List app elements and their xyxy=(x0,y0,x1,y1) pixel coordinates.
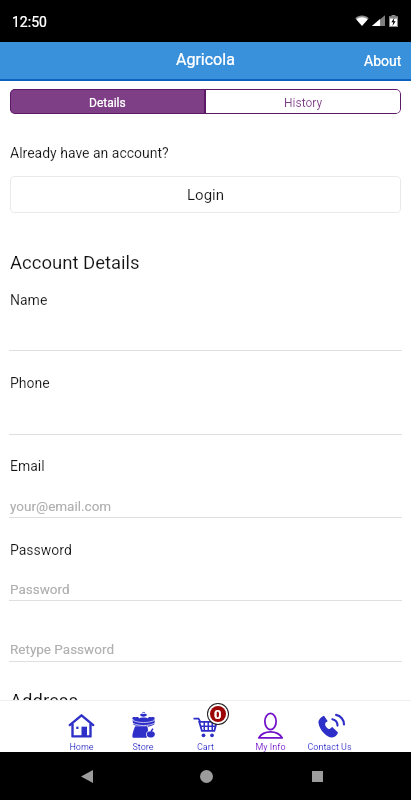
staticText: Details xyxy=(89,96,126,110)
button[interactable]: Login xyxy=(10,176,401,213)
staticText: 12:50 xyxy=(12,14,47,30)
button[interactable]: Contact Us xyxy=(298,711,360,753)
button[interactable]: About xyxy=(355,45,411,77)
button[interactable]: History xyxy=(205,89,401,114)
staticText: Agricola xyxy=(176,50,235,69)
button[interactable]: Recent apps xyxy=(305,764,329,788)
staticText: Login xyxy=(187,186,224,204)
button[interactable]: Store xyxy=(112,711,174,753)
staticText: Email xyxy=(10,458,45,474)
button[interactable]: Details xyxy=(10,89,205,114)
staticText: Password xyxy=(10,581,70,597)
staticText: About xyxy=(364,53,402,69)
button[interactable]: 0 xyxy=(174,711,236,753)
button[interactable]: Home xyxy=(50,711,112,753)
staticText: Address xyxy=(10,690,78,712)
staticText: 0 xyxy=(214,707,222,722)
staticText: Phone xyxy=(10,375,50,391)
staticText: your@email.com xyxy=(10,498,112,514)
button[interactable]: Home xyxy=(194,764,218,788)
staticText: Retype Password xyxy=(10,641,114,657)
staticText: Cart xyxy=(197,742,214,753)
staticText: Home xyxy=(69,742,94,753)
staticText: Contact Us xyxy=(307,742,352,753)
staticText: Already have an account? xyxy=(10,145,169,161)
staticText: Name xyxy=(10,292,48,308)
staticText: Password xyxy=(10,542,72,558)
button[interactable]: My Info xyxy=(239,711,301,753)
staticText: My Info xyxy=(255,742,286,753)
staticText: History xyxy=(284,96,323,110)
button[interactable]: Back xyxy=(75,764,99,788)
staticText: Store xyxy=(132,742,154,753)
staticText: Account Details xyxy=(10,252,140,274)
